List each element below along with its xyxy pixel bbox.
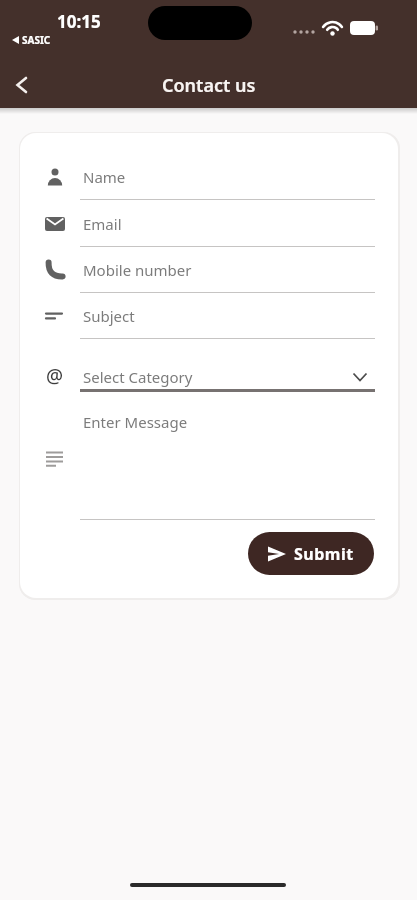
button[interactable] (5, 69, 37, 101)
staticText: Subject (83, 306, 135, 326)
staticText: Name (83, 167, 126, 187)
button[interactable] (80, 251, 375, 293)
staticText: Email (83, 214, 122, 234)
button[interactable] (80, 297, 375, 339)
button[interactable] (80, 158, 375, 200)
staticText: Select Category (83, 367, 193, 387)
staticText: Submit (294, 543, 354, 565)
button[interactable] (80, 355, 375, 392)
button[interactable]: Submit (248, 532, 374, 575)
button[interactable] (80, 205, 375, 247)
staticText: Contact us (162, 73, 256, 98)
staticText: Mobile number (83, 260, 192, 280)
staticText: @ (46, 363, 64, 389)
button[interactable] (80, 398, 375, 519)
staticText: SASIC (22, 33, 51, 47)
staticText: 10:15 (57, 10, 101, 33)
staticText: Enter Message (83, 412, 188, 432)
